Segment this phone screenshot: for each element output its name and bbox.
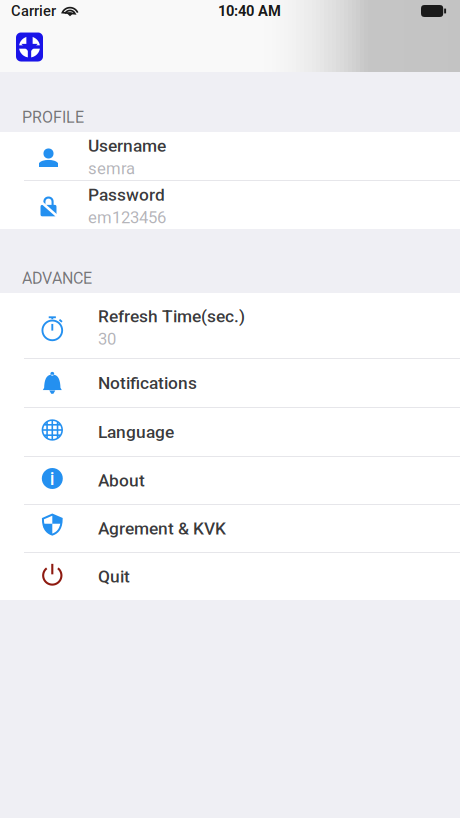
button[interactable]: App logo <box>16 32 43 61</box>
staticText: 10:40 AM <box>218 2 281 20</box>
staticText: em123456 <box>88 208 166 227</box>
button[interactable]: i <box>0 457 460 504</box>
staticText: 30 <box>98 329 116 349</box>
button[interactable]: Agrement & KVK <box>0 505 460 552</box>
staticText: Carrier <box>11 2 56 20</box>
button[interactable]: Notifications <box>0 359 460 407</box>
staticText: Notifications <box>98 373 197 393</box>
button[interactable]: Password <box>0 181 460 229</box>
staticText: PROFILE <box>22 108 84 127</box>
staticText: Quit <box>98 566 130 587</box>
button[interactable]: Quit <box>0 553 460 600</box>
staticText: Refresh Time(sec.) <box>98 306 245 326</box>
button[interactable]: Refresh Time(sec.) <box>0 293 460 358</box>
staticText: About <box>98 470 145 491</box>
staticText: Username <box>88 136 166 156</box>
staticText: semra <box>88 159 135 178</box>
button[interactable]: Language <box>0 408 460 456</box>
staticText: Password <box>88 185 165 205</box>
staticText: Agrement & KVK <box>98 518 226 539</box>
staticText: i <box>50 468 55 489</box>
staticText: Language <box>98 422 174 442</box>
button[interactable]: Username <box>0 132 460 180</box>
staticText: ADVANCE <box>22 269 92 288</box>
